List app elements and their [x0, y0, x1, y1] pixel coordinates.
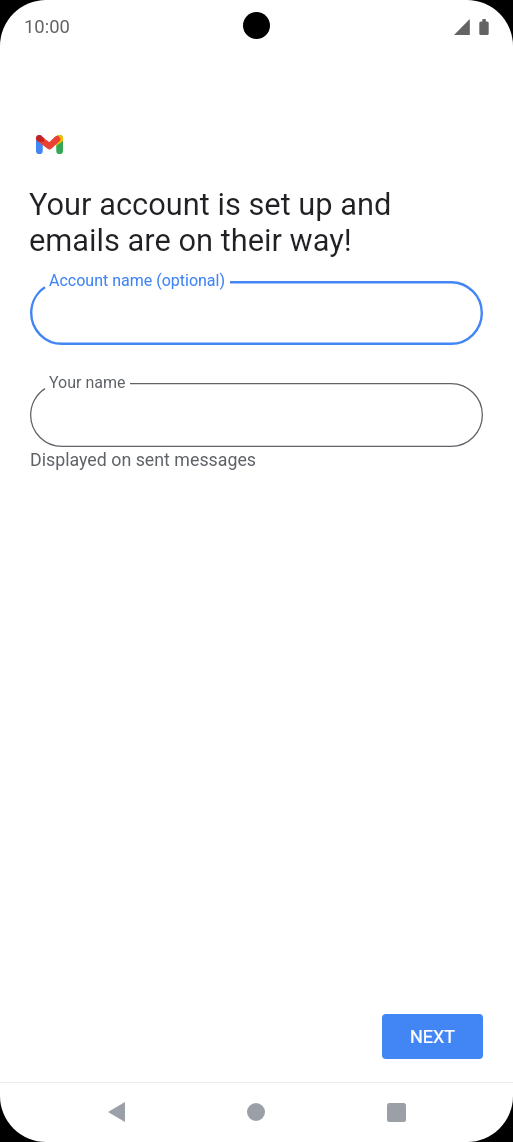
staticText: Your name: [49, 373, 126, 392]
staticText: Account name (optional): [49, 271, 226, 290]
staticText: NEXT: [410, 1026, 456, 1047]
button[interactable]: NEXT: [382, 1014, 483, 1059]
staticText: Displayed on sent messages: [30, 449, 257, 470]
button[interactable]: Recent apps: [356, 1088, 436, 1136]
button[interactable]: Home: [216, 1088, 296, 1136]
button[interactable]: Back: [76, 1088, 156, 1136]
staticText: Your account is set up and emails are on…: [29, 186, 392, 259]
staticText: 10:00: [24, 16, 70, 38]
button[interactable]: Account name (optional): [30, 281, 483, 345]
button[interactable]: Your name: [30, 383, 483, 447]
